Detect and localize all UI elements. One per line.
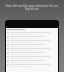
staticText: Have the world's news whenever it is on.…: [5, 4, 59, 11]
